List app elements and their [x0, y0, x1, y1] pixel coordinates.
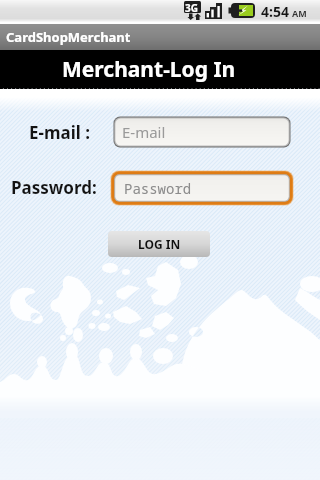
button[interactable]: Password [110, 170, 294, 206]
staticText: E-mail [122, 122, 166, 142]
staticText: LOG IN [138, 236, 181, 252]
staticText: 4:54 [261, 2, 289, 21]
staticText: Merchant-Log In [62, 55, 236, 84]
staticText: Password [124, 179, 192, 198]
staticText: AM [292, 7, 307, 19]
other: Status icons [0, 0, 320, 24]
staticText: 3G [185, 1, 198, 15]
staticText: Password: [11, 176, 97, 199]
staticText: E-mail : [29, 121, 91, 144]
staticText: CardShopMerchant [6, 28, 131, 46]
button[interactable]: E-mail [113, 116, 291, 148]
button[interactable]: LOG IN [108, 231, 210, 257]
